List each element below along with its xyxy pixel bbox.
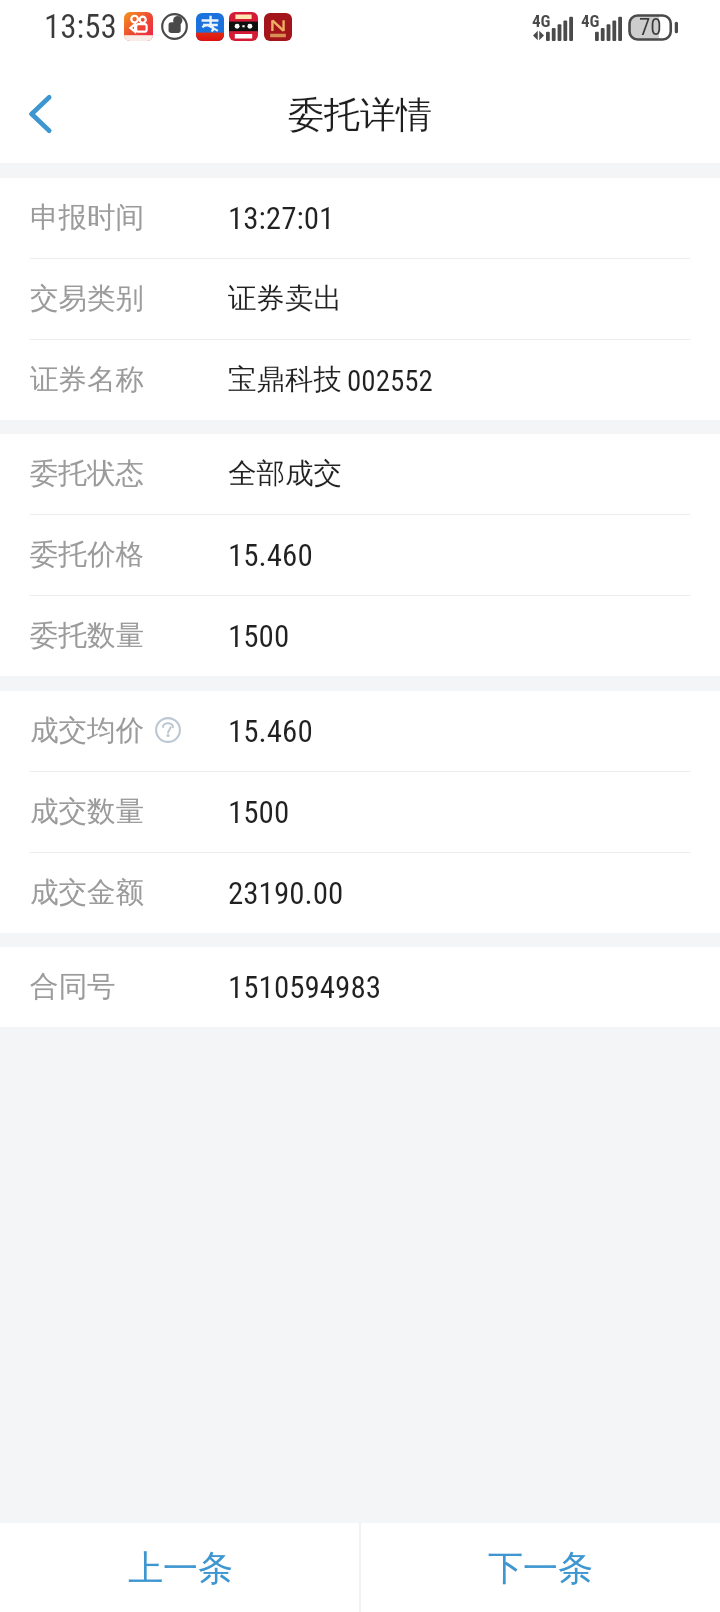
button[interactable]: 交易类别 [0, 259, 720, 339]
staticText: 委托数量 [30, 618, 144, 654]
staticText: 下一条 [488, 1546, 593, 1590]
staticText: 成交数量 [30, 794, 144, 830]
button[interactable]: 成交数量 [0, 772, 720, 852]
button[interactable]: 成交均价 [0, 691, 720, 771]
button[interactable]: 证券名称 [0, 340, 720, 420]
button[interactable]: 委托状态 [0, 434, 720, 514]
staticText: 13:27:01 [228, 200, 335, 236]
button[interactable]: 委托价格 [0, 515, 720, 595]
button[interactable]: 上一条 [0, 1523, 360, 1612]
staticText: 证券名称 [30, 362, 144, 398]
button[interactable]: 成交金额 [0, 853, 720, 933]
staticText: 成交均价 [30, 713, 144, 749]
button[interactable]: 合同号 [0, 947, 720, 1027]
staticText: 1510594983 [228, 969, 382, 1005]
staticText: 13:53 [44, 7, 117, 46]
staticText: 4G [532, 11, 551, 31]
staticText: 交易类别 [30, 281, 144, 317]
staticText: 证券卖出 [228, 281, 342, 317]
staticText: 002552 [347, 364, 433, 398]
button[interactable]: 下一条 [360, 1523, 720, 1612]
staticText: 委托状态 [30, 456, 144, 492]
staticText: 4G [581, 11, 600, 31]
staticText: 1500 [228, 794, 290, 830]
staticText: 宝鼎科技 [228, 362, 342, 398]
button[interactable]: 申报时间 [0, 178, 720, 258]
staticText: 成交金额 [30, 875, 144, 911]
staticText: 70 [639, 14, 662, 41]
staticText: 委托详情 [288, 92, 432, 137]
staticText: 15.460 [228, 537, 313, 573]
staticText: 申报时间 [30, 200, 144, 236]
button[interactable]: 委托数量 [0, 596, 720, 676]
staticText: 上一条 [128, 1546, 233, 1590]
button[interactable]: Back [0, 65, 82, 163]
staticText: 委托价格 [30, 537, 144, 573]
staticText: 合同号 [30, 969, 116, 1005]
staticText: 全部成交 [228, 456, 342, 492]
button[interactable]: Help: average transaction price [155, 717, 181, 743]
staticText: 1500 [228, 618, 290, 654]
staticText: 15.460 [228, 713, 313, 749]
staticText: 23190.00 [228, 875, 344, 911]
